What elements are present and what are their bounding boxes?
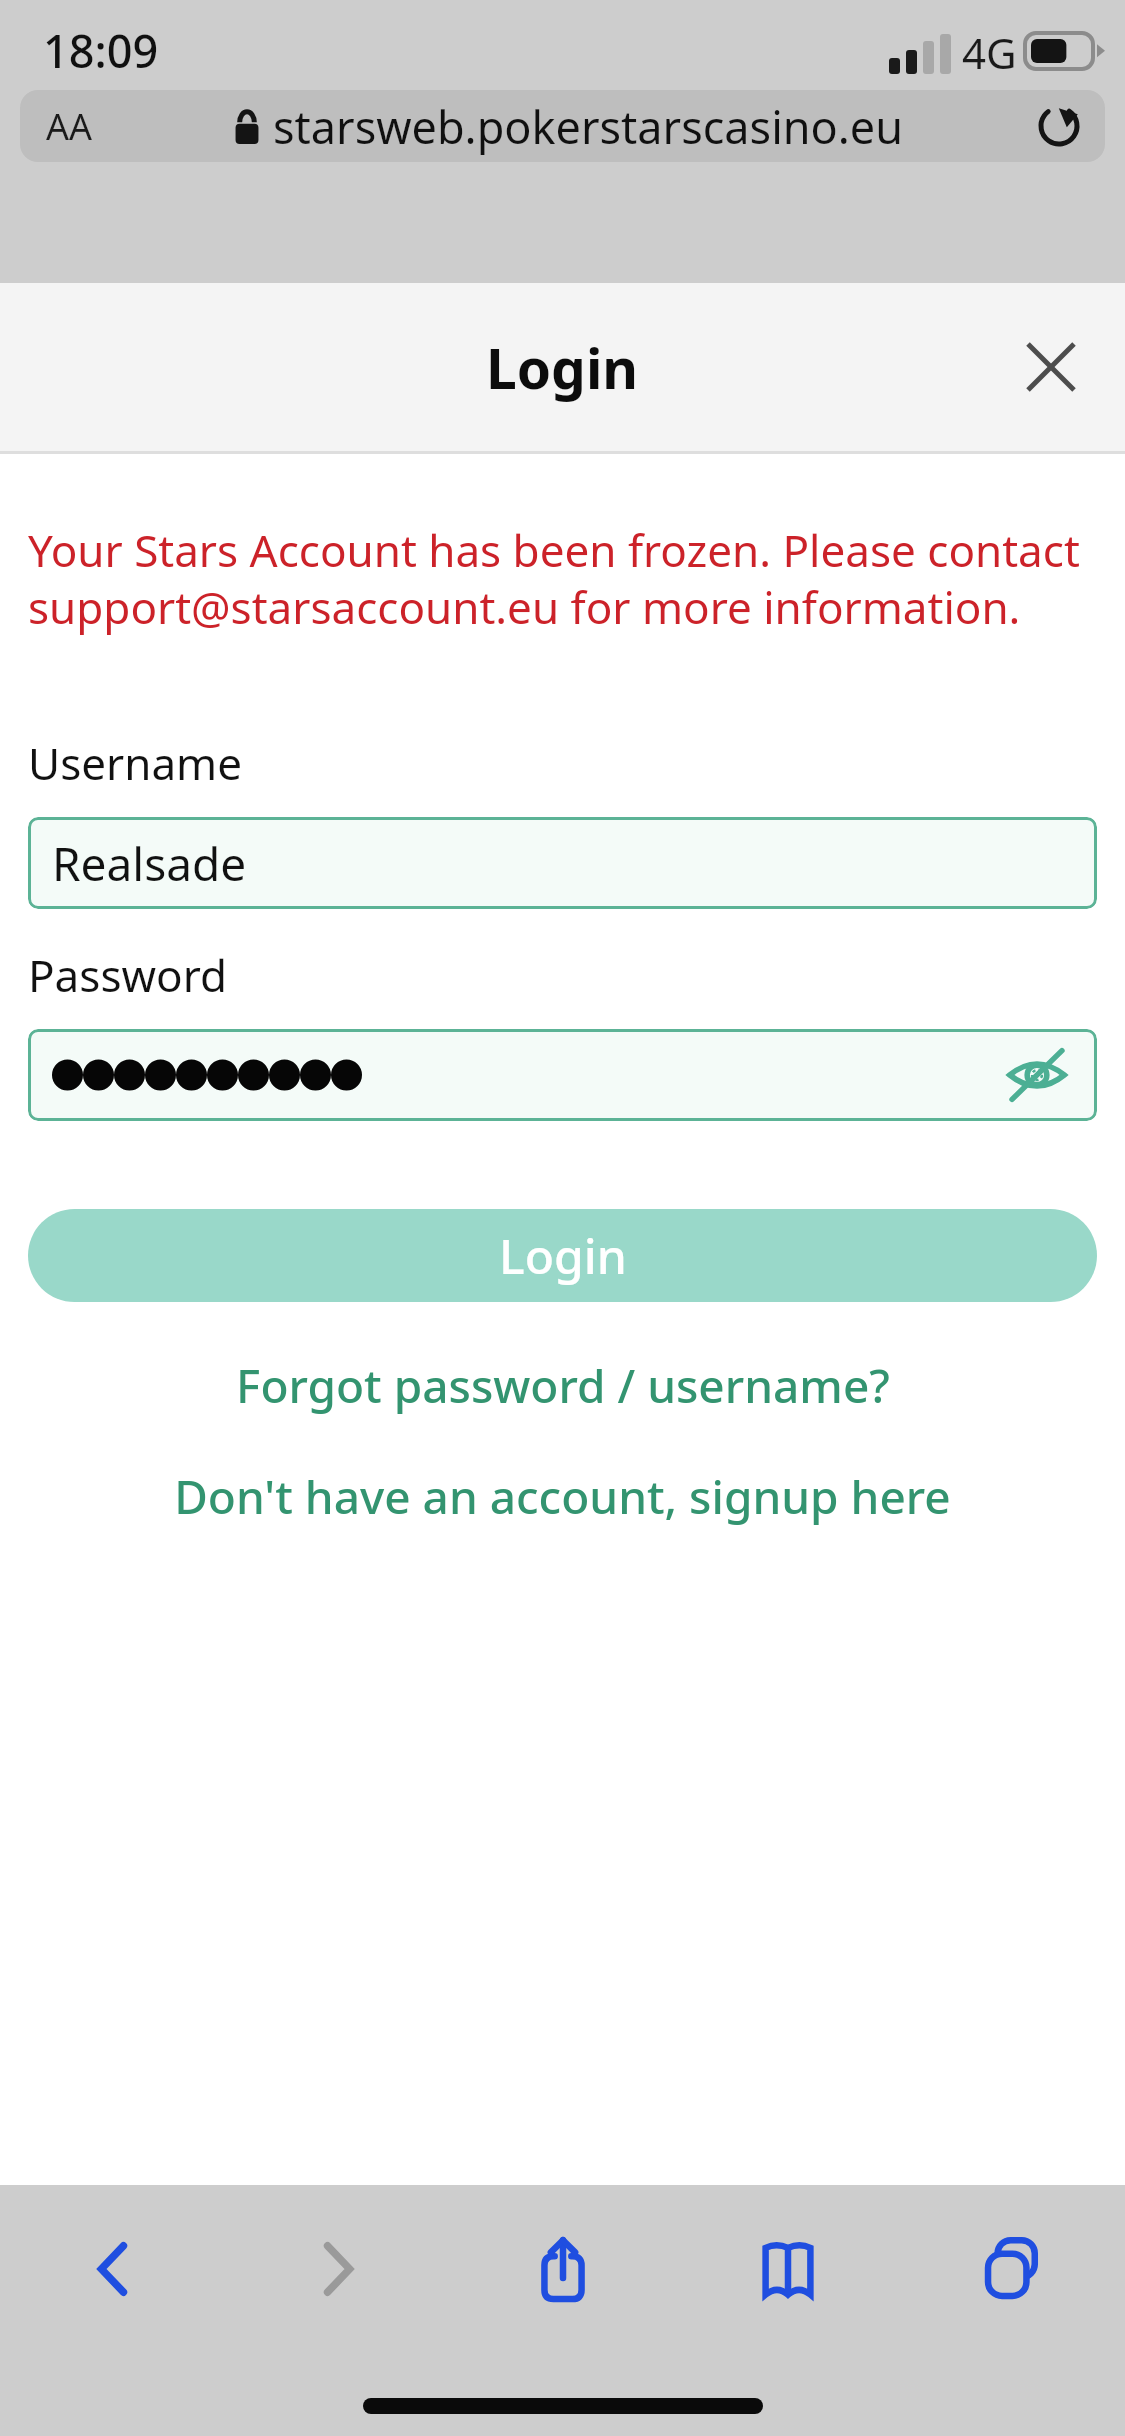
- staticText: Password: [28, 945, 228, 1005]
- button[interactable]: Share: [450, 2185, 675, 2353]
- button[interactable]: Reload: [1023, 90, 1095, 162]
- button[interactable]: Don't have an account, signup here: [0, 1465, 1125, 1528]
- button[interactable]: Tabs: [900, 2185, 1125, 2353]
- button[interactable]: Show password: [993, 1031, 1081, 1119]
- staticText: Login: [486, 330, 639, 405]
- button[interactable]: Forward: [225, 2185, 450, 2353]
- staticText: 4G: [962, 24, 1017, 81]
- button[interactable]: Close: [999, 315, 1103, 419]
- button[interactable]: Realsade: [28, 817, 1097, 909]
- button[interactable]: Forgot password / username?: [0, 1354, 1125, 1417]
- staticText: Login: [499, 1223, 627, 1288]
- staticText: Forgot password / username?: [236, 1354, 890, 1417]
- staticText: Your Stars Account has been frozen. Plea…: [28, 520, 1097, 637]
- button[interactable]: Bookmarks: [675, 2185, 900, 2353]
- staticText: Username: [28, 733, 243, 793]
- button[interactable]: Back: [0, 2185, 225, 2353]
- button[interactable]: AA: [20, 90, 1105, 162]
- staticText: AA: [46, 102, 93, 151]
- staticText: Don't have an account, signup here: [174, 1465, 951, 1528]
- button[interactable]: Login: [28, 1209, 1097, 1302]
- staticText: 18:09: [43, 20, 159, 81]
- staticText: Realsade: [52, 832, 247, 895]
- staticText: starsweb.pokerstarscasino.eu: [273, 96, 904, 157]
- button[interactable]: Show password: [28, 1029, 1097, 1121]
